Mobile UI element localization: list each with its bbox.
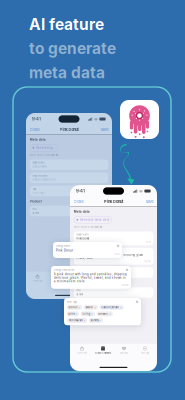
staticText: 9:41 <box>76 188 85 194</box>
staticText: pink <box>69 312 75 315</box>
button[interactable]: Close <box>73 198 87 205</box>
staticText: × <box>91 312 93 315</box>
staticText: donut <box>69 306 78 309</box>
button[interactable]: Settings <box>90 273 111 283</box>
staticText: Add tags <box>32 191 44 194</box>
staticText: Pink Donut <box>104 199 123 204</box>
staticText: Price <box>76 289 80 292</box>
staticText: 10/40 <box>114 253 119 256</box>
button[interactable]: Save <box>94 126 108 133</box>
staticText: dessert <box>98 312 108 315</box>
button[interactable]: Overview <box>71 345 92 355</box>
staticText: AI feature <box>29 15 104 34</box>
staticText: Business <box>75 280 83 282</box>
button[interactable]: Overview <box>27 273 48 283</box>
button[interactable]: Save <box>139 198 153 205</box>
staticText: 3.50 <box>32 211 39 214</box>
staticText: Design description <box>32 178 55 181</box>
button[interactable]: Glaze Channels <box>92 345 113 355</box>
staticText: × <box>78 306 80 309</box>
staticText: Meta data <box>30 138 46 141</box>
staticText: to generate <box>29 39 116 58</box>
button[interactable]: Generate meta data <box>74 216 112 223</box>
staticText: The AI terms of use apply <box>30 154 55 156</box>
button[interactable]: Glaze Channels <box>48 273 69 283</box>
staticText: Design Description <box>32 175 47 177</box>
staticText: Close <box>29 127 39 132</box>
staticText: × <box>75 312 77 315</box>
button[interactable]: Business <box>69 273 90 283</box>
staticText: Generating... <box>36 146 56 149</box>
staticText: Pink Donut <box>76 237 89 240</box>
staticText: × <box>99 319 101 322</box>
staticText: Save <box>100 127 108 132</box>
staticText: A pink donut with long and sprinkles, dr… <box>76 253 143 259</box>
button[interactable]: Business <box>113 345 134 355</box>
staticText: Design name <box>32 165 46 168</box>
button[interactable]: Close <box>29 126 43 133</box>
staticText: × <box>120 306 122 309</box>
staticText: Product <box>74 281 86 285</box>
staticText: 118/300 <box>121 284 128 286</box>
staticText: meta data <box>29 63 105 82</box>
staticText: 118/300 <box>144 260 151 263</box>
staticText: Glaze Channels <box>95 352 111 354</box>
staticText: Generate meta data <box>80 218 110 221</box>
staticText: Design Name <box>32 161 44 164</box>
staticText: 3.50 <box>76 293 83 296</box>
staticText: Meta data <box>74 210 90 213</box>
staticText: Design Name <box>56 244 70 247</box>
staticText: 9:41 <box>32 116 41 122</box>
staticText: yummy <box>90 319 98 322</box>
staticText: Design Description <box>54 268 74 271</box>
staticText: Glaze Channels <box>50 280 66 282</box>
staticText: carbohydrate <box>101 306 119 309</box>
staticText: × <box>83 319 85 322</box>
staticText: Settings <box>141 352 149 354</box>
staticText: 10/40 <box>146 241 151 243</box>
staticText: Overview <box>32 280 42 282</box>
button[interactable]: Generating... <box>30 144 58 151</box>
staticText: Pink Donut <box>59 127 78 132</box>
staticText: sweet <box>85 306 93 309</box>
staticText: The AI terms of use apply <box>74 226 99 228</box>
staticText: × <box>109 312 111 315</box>
staticText: Design Name <box>76 233 88 236</box>
staticText: A pink donut with long and sprinkles, dr… <box>54 272 127 283</box>
button[interactable]: Settings <box>134 345 155 355</box>
staticText: Save <box>145 199 153 204</box>
staticText: Pink Donut <box>56 248 73 252</box>
staticText: × <box>94 306 96 309</box>
staticText: donut, sweet, pink <box>76 273 98 276</box>
staticText: Business <box>120 352 128 354</box>
staticText: icing <box>82 312 90 315</box>
staticText: Enter Tags <box>67 300 77 303</box>
staticText: Close <box>73 199 83 204</box>
staticText: Product <box>30 200 42 203</box>
staticText: Tags <box>32 188 36 190</box>
staticText: minimalism <box>69 319 83 322</box>
staticText: Price <box>32 208 36 210</box>
staticText: Overview <box>77 352 87 354</box>
